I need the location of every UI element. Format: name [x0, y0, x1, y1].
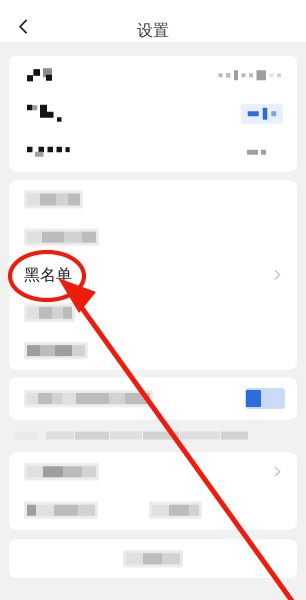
- button[interactable]: [9, 377, 297, 419]
- button[interactable]: [9, 491, 297, 529]
- button[interactable]: 黑名单: [9, 256, 297, 294]
- button[interactable]: [9, 452, 297, 491]
- button[interactable]: [9, 133, 297, 171]
- button[interactable]: [9, 539, 297, 578]
- button[interactable]: [9, 94, 297, 133]
- staticText: 设置: [137, 21, 169, 40]
- staticText: 黑名单: [24, 265, 72, 285]
- button[interactable]: [9, 218, 297, 256]
- button[interactable]: [9, 56, 297, 94]
- button[interactable]: [9, 332, 297, 369]
- button[interactable]: [9, 180, 297, 218]
- button[interactable]: Back: [0, 0, 40, 42]
- button[interactable]: [9, 294, 297, 332]
